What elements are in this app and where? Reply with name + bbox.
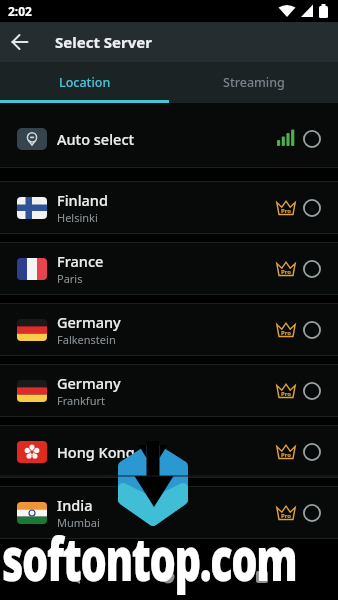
- button[interactable]: Germany: [0, 303, 338, 356]
- staticText: Pro: [281, 329, 292, 337]
- staticText: Falkenstein: [57, 332, 116, 347]
- button[interactable]: Germany: [0, 364, 338, 417]
- staticText: Pro: [281, 512, 292, 520]
- button[interactable]: France: [0, 242, 338, 295]
- button[interactable]: [0, 22, 40, 62]
- button[interactable]: Location: [0, 62, 169, 103]
- staticText: Location: [59, 74, 111, 91]
- button[interactable]: Auto select: [0, 103, 338, 168]
- staticText: Hong Kong: [57, 442, 135, 462]
- button[interactable]: Hong Kong: [0, 425, 338, 478]
- button[interactable]: Streaming: [169, 62, 338, 103]
- staticText: softontop.com: [2, 517, 235, 599]
- staticText: Finland: [57, 190, 108, 210]
- button[interactable]: Finland: [0, 181, 338, 234]
- staticText: Paris: [57, 271, 83, 286]
- staticText: Pro: [281, 451, 292, 459]
- staticText: India: [57, 495, 93, 515]
- button[interactable]: India: [0, 486, 338, 539]
- staticText: Pro: [281, 390, 292, 398]
- staticText: 2:02: [8, 3, 32, 19]
- staticText: Frankfurt: [57, 393, 105, 408]
- staticText: Pro: [281, 207, 292, 215]
- staticText: France: [57, 251, 104, 271]
- staticText: Auto select: [57, 129, 135, 149]
- staticText: Pro: [281, 268, 292, 276]
- staticText: Streaming: [223, 74, 285, 91]
- staticText: Germany: [57, 312, 121, 332]
- staticText: Helsinki: [57, 210, 98, 225]
- staticText: Mumbai: [57, 515, 100, 530]
- staticText: Select Server: [55, 32, 152, 52]
- staticText: Germany: [57, 373, 121, 393]
